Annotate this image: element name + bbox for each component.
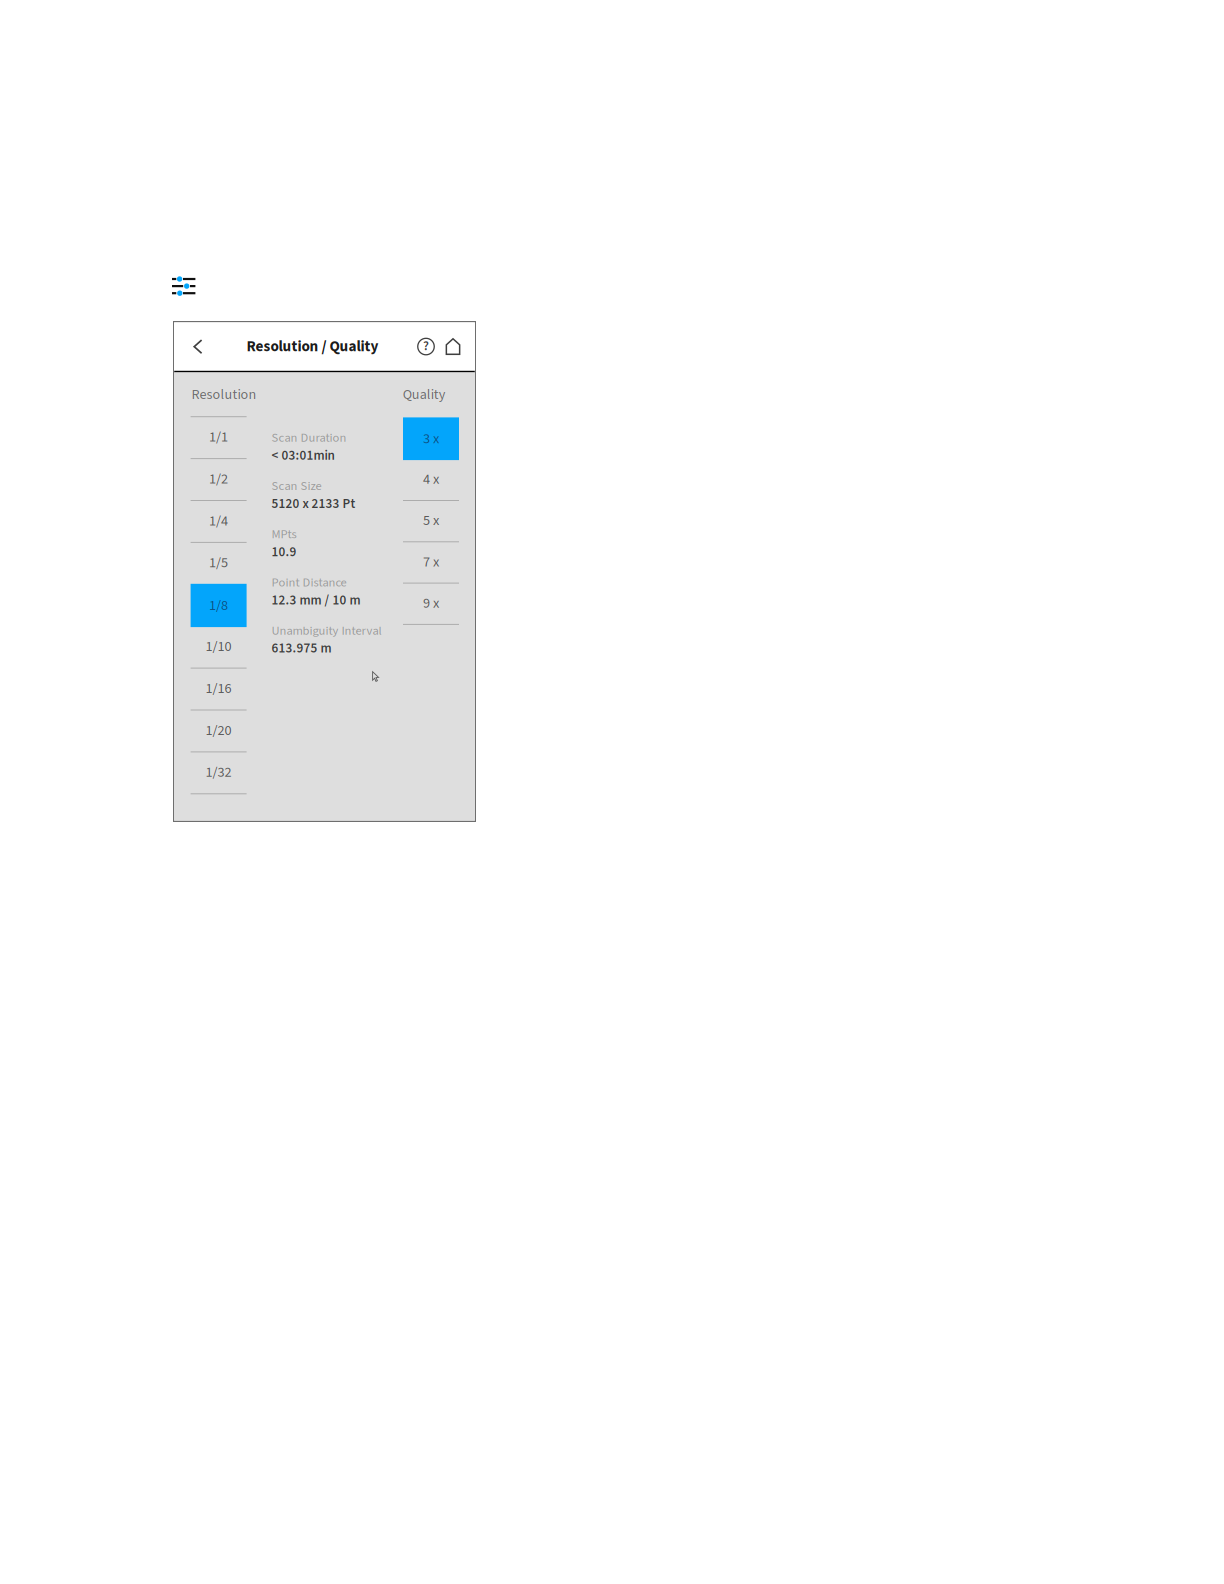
- staticText: Resolution / Quality: [246, 336, 378, 357]
- button[interactable]: Back: [181, 322, 215, 371]
- staticText: MPts: [271, 525, 296, 543]
- staticText: 1/16: [206, 678, 232, 699]
- staticText: Scan Size: [271, 477, 321, 495]
- button[interactable]: 1/20: [191, 709, 247, 751]
- staticText: Resolution: [192, 385, 257, 405]
- button[interactable]: 5 x: [403, 500, 459, 541]
- button[interactable]: 1/8: [191, 584, 247, 627]
- button[interactable]: 1/32: [191, 751, 247, 793]
- staticText: 3 x: [423, 429, 439, 449]
- staticText: ?: [423, 337, 429, 356]
- staticText: 1/1: [209, 427, 228, 447]
- staticText: 9 x: [423, 593, 439, 613]
- staticText: 1/8: [209, 595, 228, 616]
- staticText: 1/20: [206, 720, 232, 741]
- button[interactable]: 3 x: [403, 417, 459, 460]
- staticText: 5120 x 2133 Pt: [271, 494, 355, 513]
- button[interactable]: Help: [411, 322, 441, 371]
- staticText: Quality: [403, 385, 446, 405]
- button[interactable]: Home: [438, 322, 468, 371]
- button[interactable]: 4 x: [403, 459, 459, 500]
- button[interactable]: 7 x: [403, 541, 459, 583]
- staticText: Point Distance: [271, 574, 346, 591]
- staticText: Scan Duration: [271, 429, 346, 447]
- button[interactable]: 1/2: [191, 458, 247, 500]
- button[interactable]: 1/4: [191, 500, 247, 542]
- button[interactable]: 9 x: [403, 583, 459, 624]
- staticText: 7 x: [423, 552, 439, 572]
- button[interactable]: 1/10: [191, 626, 247, 668]
- staticText: 1/4: [209, 511, 228, 531]
- staticText: 12.3 mm / 10 m: [271, 591, 360, 610]
- staticText: 5 x: [423, 510, 439, 531]
- staticText: 1/5: [209, 553, 228, 573]
- staticText: Unambiguity Interval: [271, 622, 381, 640]
- staticText: 4 x: [423, 469, 439, 489]
- staticText: 1/10: [206, 636, 232, 657]
- button[interactable]: 1/1: [191, 416, 247, 458]
- button[interactable]: Resolution / Quality: [242, 322, 382, 371]
- button[interactable]: 1/16: [191, 668, 247, 709]
- staticText: 1/32: [206, 762, 232, 782]
- staticText: 10.9: [271, 543, 296, 561]
- button[interactable]: 1/5: [191, 542, 247, 584]
- staticText: < 03:01min: [271, 446, 334, 465]
- staticText: 1/2: [209, 469, 228, 489]
- staticText: 613.975 m: [271, 639, 331, 658]
